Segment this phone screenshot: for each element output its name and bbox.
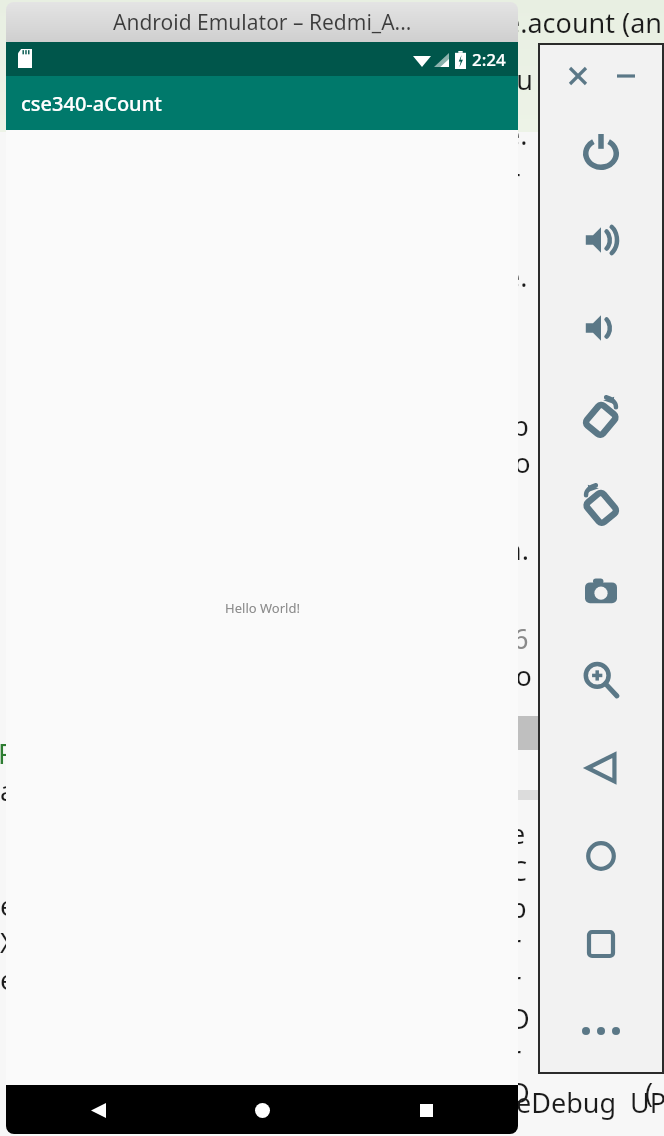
staticText: e	[0, 961, 16, 998]
staticText: X	[0, 924, 16, 961]
button[interactable]: cse340-aCount	[6, 76, 518, 130]
staticText: eDebug UP–T	[516, 1084, 664, 1121]
staticText: ru	[505, 61, 533, 98]
button[interactable]: Power	[539, 108, 663, 196]
staticText: e	[0, 887, 16, 924]
staticText: e	[510, 815, 526, 852]
button[interactable]: Home	[539, 812, 663, 900]
button[interactable]: Zoom	[539, 636, 663, 724]
staticText: Hello World!	[225, 599, 300, 617]
staticText: C	[510, 852, 528, 889]
button[interactable]: Back	[539, 724, 663, 812]
staticText: cse340-aCount	[21, 90, 162, 117]
staticText: r	[510, 926, 522, 963]
staticText: ro	[505, 657, 532, 694]
staticText: Android Emulator – Redmi_A...	[113, 8, 412, 37]
staticText: r	[510, 1037, 522, 1074]
staticText: e.acount (an	[505, 4, 662, 41]
staticText: 2:24	[472, 48, 506, 71]
button[interactable]: Overview	[539, 900, 663, 988]
staticText: e.	[505, 258, 528, 295]
staticText: D	[510, 1000, 530, 1037]
staticText: fo	[505, 444, 531, 481]
button[interactable]: Rotate right	[539, 460, 663, 548]
staticText: (6	[505, 620, 529, 657]
button[interactable]: Minimize	[609, 59, 643, 93]
button[interactable]: More	[539, 988, 663, 1073]
staticText: (	[645, 1074, 654, 1111]
button[interactable]: Rotate left	[539, 372, 663, 460]
staticText: .b	[505, 407, 529, 444]
staticText: s	[645, 1037, 658, 1074]
staticText: b	[510, 889, 527, 926]
staticText: n.	[505, 531, 529, 568]
staticText: R	[0, 735, 15, 772]
button[interactable]: Recent apps	[404, 1088, 448, 1132]
button[interactable]: Volume down	[539, 284, 663, 372]
staticText: r	[510, 963, 522, 1000]
staticText: T	[505, 165, 521, 202]
button[interactable]: Android Emulator – Redmi_A...	[6, 2, 518, 42]
button[interactable]: Volume up	[539, 196, 663, 284]
staticText: a	[0, 772, 16, 809]
button[interactable]: Close	[561, 59, 595, 93]
button[interactable]: Take screenshot	[539, 548, 663, 636]
button[interactable]: Home	[240, 1088, 284, 1132]
staticText: e.	[505, 116, 528, 153]
button[interactable]: Back	[76, 1088, 120, 1132]
staticText: D	[510, 1074, 530, 1111]
